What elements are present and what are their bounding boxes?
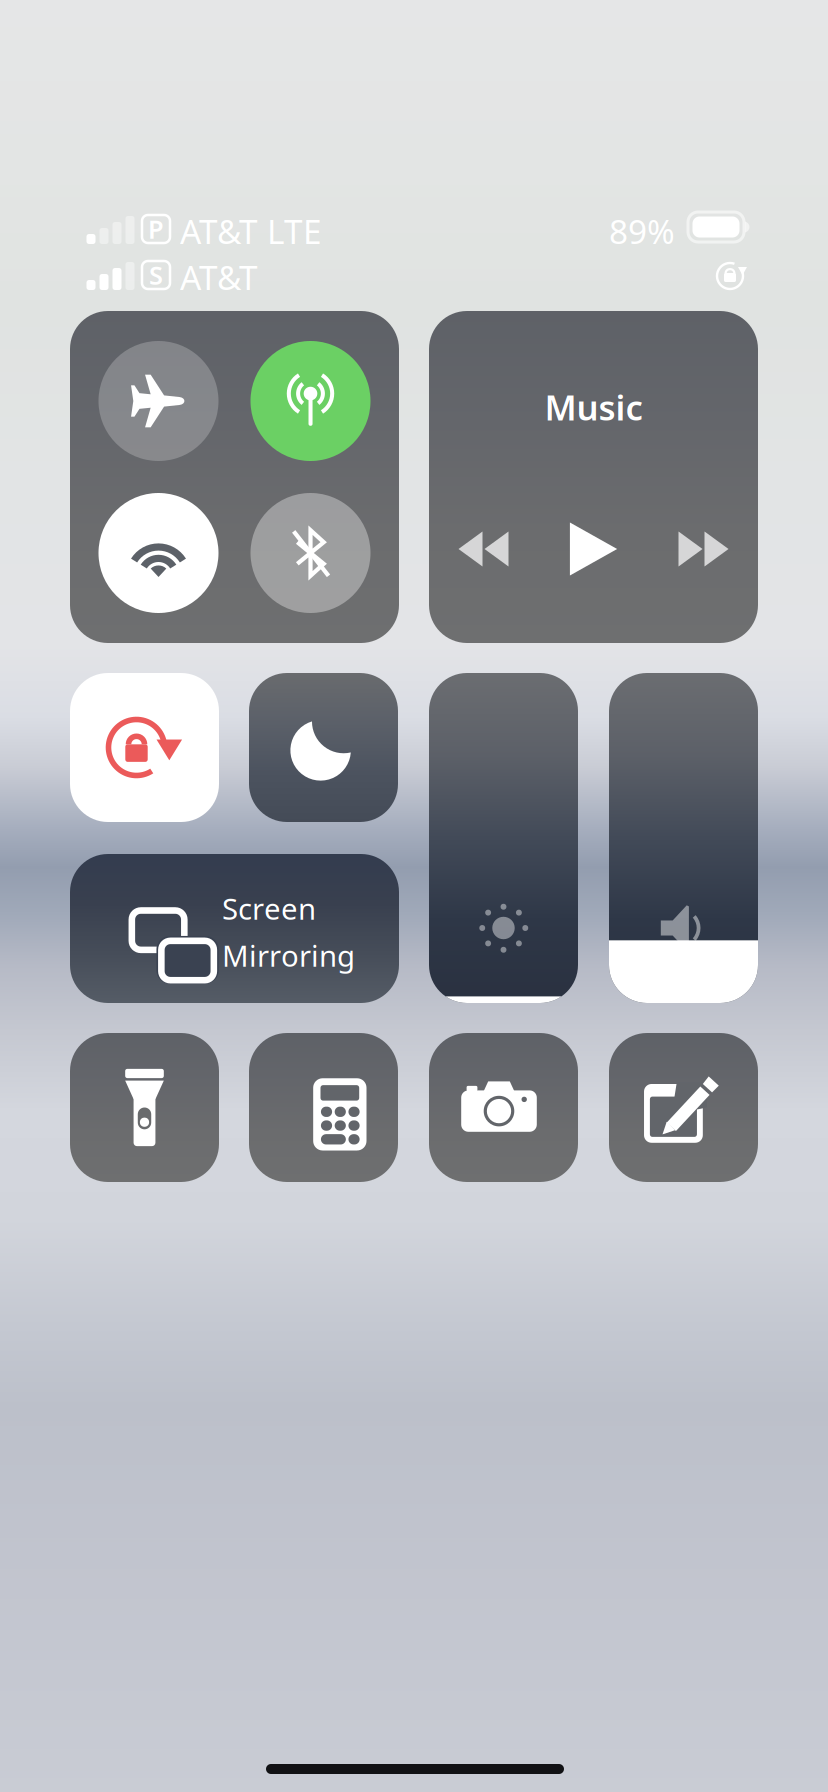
button[interactable]: Next Track xyxy=(648,501,758,597)
staticText: P xyxy=(148,212,164,246)
button[interactable]: Camera xyxy=(429,1033,578,1182)
staticText: Music xyxy=(544,384,642,430)
button[interactable]: Wi-Fi xyxy=(98,493,218,613)
staticText: 89% xyxy=(609,209,675,253)
button[interactable]: Brightness xyxy=(429,673,578,1003)
button[interactable]: Calculator xyxy=(249,1033,398,1182)
button[interactable]: Previous Track xyxy=(428,501,538,597)
button[interactable]: Flashlight xyxy=(70,1033,219,1182)
staticText: AT&T xyxy=(180,255,258,299)
button[interactable]: Screen xyxy=(70,854,399,1003)
button[interactable]: Airplane Mode xyxy=(98,341,218,461)
button[interactable]: Do Not Disturb xyxy=(249,673,398,822)
button[interactable]: Bluetooth xyxy=(250,493,370,613)
staticText: Screen xyxy=(222,889,316,928)
staticText: AT&T LTE xyxy=(180,209,322,253)
button[interactable]: Rotation Lock xyxy=(70,673,219,822)
staticText: S xyxy=(149,258,163,292)
button[interactable]: Volume xyxy=(609,673,758,1003)
staticText: Mirroring xyxy=(222,936,355,975)
button[interactable]: Notes xyxy=(609,1033,758,1182)
button[interactable]: Play xyxy=(538,501,648,597)
button[interactable]: Cellular Data xyxy=(250,341,370,461)
